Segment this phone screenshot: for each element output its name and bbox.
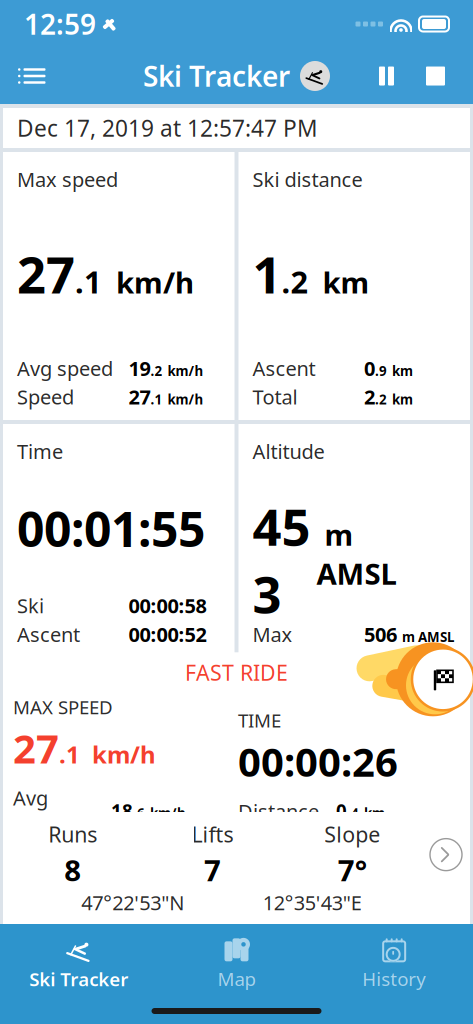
staticText: Ski Tracker (29, 967, 128, 991)
staticText: km (364, 804, 385, 822)
staticText: .6 (133, 804, 145, 822)
button[interactable]: More details (422, 831, 470, 879)
staticText: 00:00:58 (128, 592, 206, 619)
staticText: FAST RIDE (185, 658, 288, 687)
staticText: .1 (59, 738, 80, 770)
button[interactable]: Ski Tracker (0, 930, 158, 999)
staticText: Max (252, 621, 292, 647)
staticText: MAX SPEED (13, 695, 113, 719)
staticText: Lifts (191, 820, 233, 848)
staticText: 00:01:55 (17, 497, 205, 560)
staticText: Ski Tracker (143, 57, 290, 95)
button[interactable]: Menu (0, 54, 63, 98)
staticText: km/h (167, 362, 203, 380)
staticText: Avg speed (13, 785, 69, 838)
button[interactable]: Activity type (300, 61, 330, 91)
staticText: Time (17, 438, 63, 465)
staticText: km/h (150, 804, 186, 822)
button[interactable]: Pause (371, 58, 402, 93)
staticText: .1 (75, 261, 102, 302)
staticText: 12:59 (24, 5, 96, 43)
staticText: 453 (252, 492, 310, 627)
staticText: km/h (86, 738, 156, 770)
staticText: m AMSL (402, 656, 454, 674)
staticText: .1 (150, 390, 162, 408)
staticText: Distance (238, 798, 319, 824)
staticText: .2 (375, 390, 387, 408)
staticText: 7 (204, 850, 221, 889)
staticText: 2 (364, 383, 375, 410)
staticText: m AMSL (402, 628, 454, 646)
staticText: Map (217, 966, 255, 991)
staticText: Altitude (252, 438, 324, 465)
staticText: 0 (364, 355, 375, 381)
staticText: Ascent (17, 621, 80, 647)
staticText: km/h (167, 390, 203, 408)
staticText: Dec 17, 2019 at 12:57:47 PM (17, 113, 318, 143)
staticText: Slope (324, 820, 380, 848)
staticText: 00:00:26 (238, 735, 398, 788)
staticText: 19 (128, 355, 150, 381)
staticText: Min (252, 649, 287, 676)
staticText: .4 (347, 804, 359, 822)
staticText: .2 (150, 362, 162, 380)
staticText: Max speed (17, 166, 118, 193)
staticText: Ski distance (252, 166, 362, 193)
staticText: km (392, 362, 413, 380)
staticText: 18 (111, 799, 133, 823)
staticText: m AMSL (316, 515, 396, 593)
staticText: 0 (336, 799, 347, 823)
staticText: Ski (17, 592, 44, 619)
staticText: 7° (338, 850, 367, 889)
staticText: km (314, 262, 369, 301)
staticText: .9 (375, 362, 387, 380)
staticText: Speed (17, 383, 74, 410)
button[interactable]: History (315, 930, 473, 999)
staticText: Runs (48, 820, 97, 848)
staticText: 27 (17, 240, 75, 307)
button[interactable]: Stop (418, 58, 453, 93)
staticText: km (392, 390, 413, 408)
staticText: 47°22'53"N (81, 889, 184, 916)
staticText: km/h (108, 262, 194, 301)
staticText: 00:00:03 (128, 649, 206, 676)
staticText: .2 (281, 261, 308, 302)
staticText: 00:00:52 (128, 621, 206, 647)
staticText: 506 (364, 621, 397, 647)
staticText: 357 (364, 649, 397, 676)
staticText: 8 (64, 850, 81, 889)
staticText: Avg speed (17, 355, 113, 381)
staticText: History (362, 966, 426, 991)
staticText: Total (252, 383, 297, 410)
staticText: 1 (252, 240, 281, 307)
staticText: 27 (13, 721, 59, 774)
staticText: 27 (128, 383, 150, 410)
staticText: 12°35'43"E (263, 889, 362, 916)
staticText: Ascent (252, 355, 315, 381)
staticText: TIME (238, 708, 281, 733)
button[interactable]: Map (158, 930, 315, 999)
